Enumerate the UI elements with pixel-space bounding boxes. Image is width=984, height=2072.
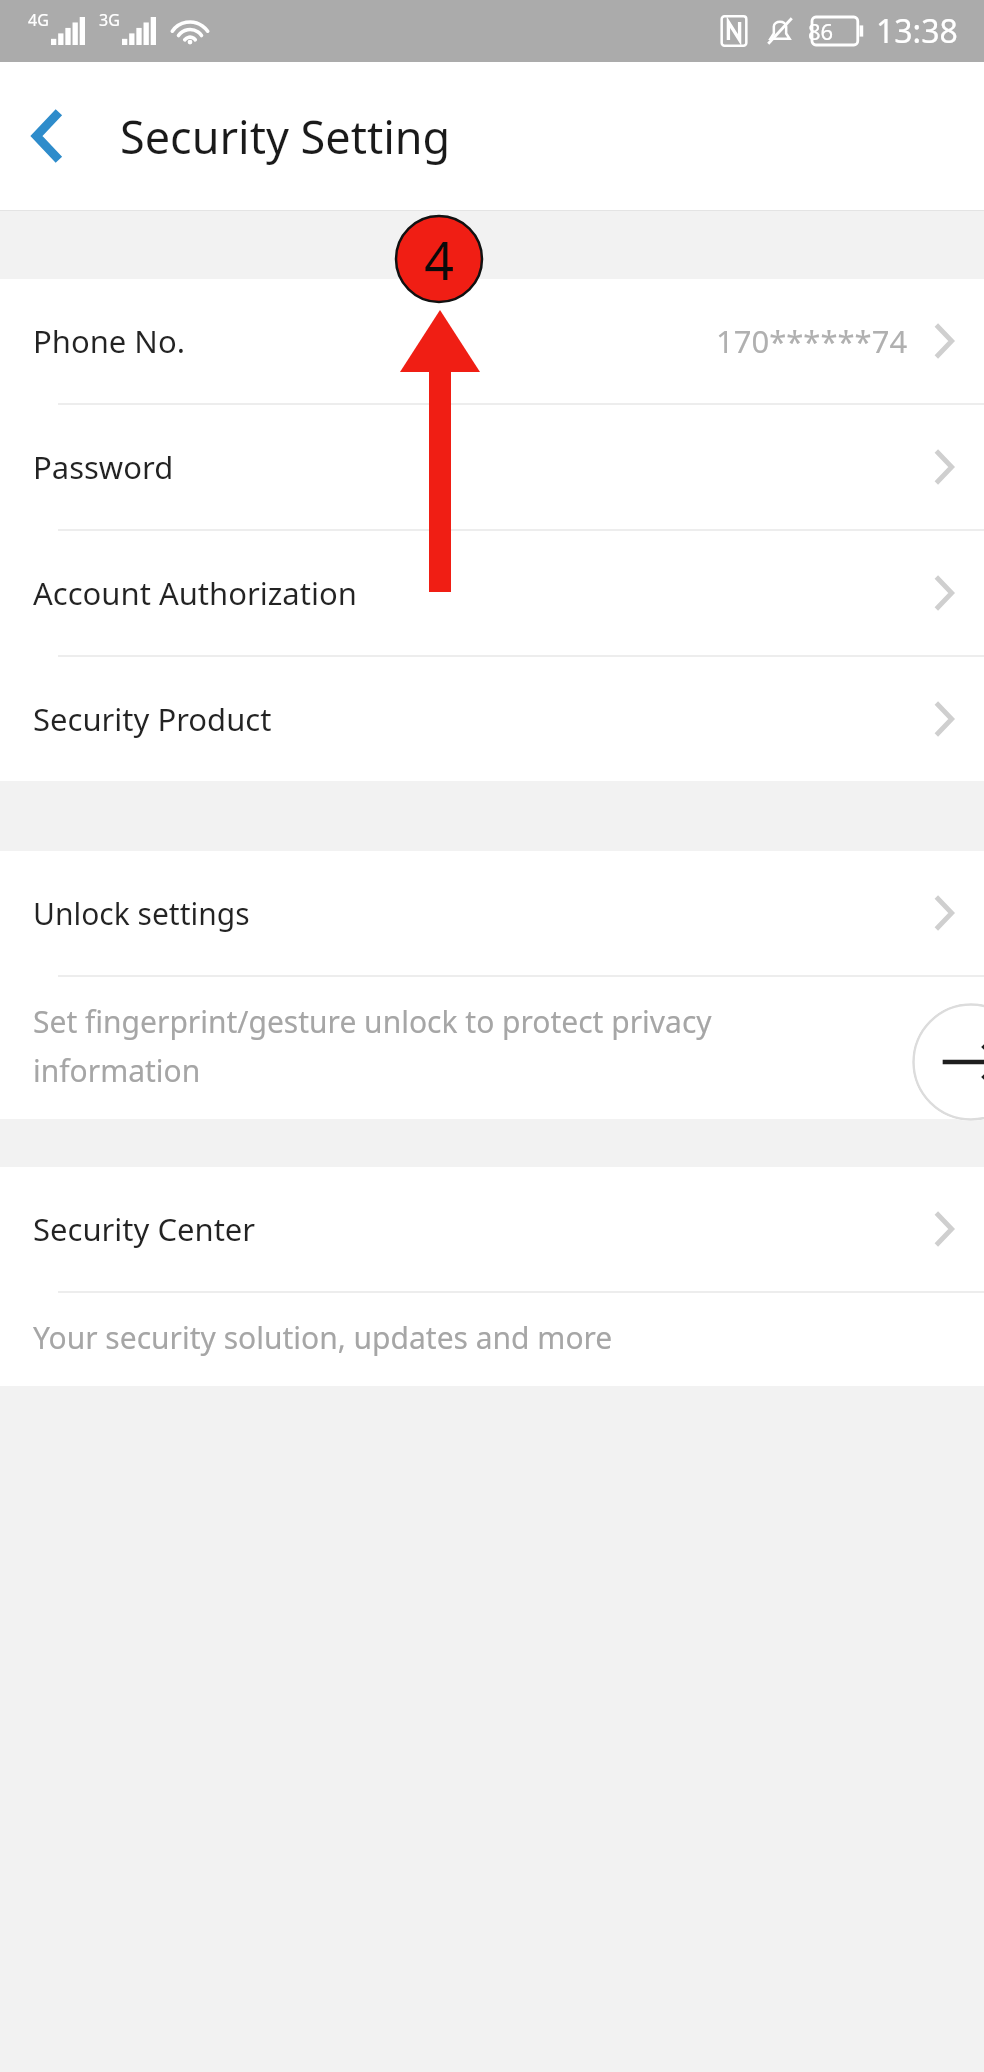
staticText: Phone No.: [33, 320, 185, 362]
staticText: 4: [424, 224, 454, 295]
button[interactable]: Back: [0, 81, 96, 191]
staticText: Security Setting: [120, 106, 451, 167]
staticText: information: [33, 1050, 201, 1091]
button[interactable]: Next: [912, 1003, 984, 1121]
button[interactable]: Account Authorization: [0, 531, 984, 655]
staticText: 3G: [99, 9, 120, 31]
button[interactable]: Security Center: [0, 1167, 984, 1291]
staticText: Account Authorization: [33, 572, 357, 614]
staticText: Security Product: [33, 698, 272, 740]
button[interactable]: Security Product: [0, 657, 984, 781]
button[interactable]: Phone No.: [0, 279, 984, 403]
staticText: Security Center: [33, 1208, 256, 1250]
staticText: Your security solution, updates and more: [33, 1317, 613, 1358]
button[interactable]: Password: [0, 405, 984, 529]
staticText: Set fingerprint/gesture unlock to protec…: [33, 1001, 712, 1042]
button[interactable]: Unlock settings: [0, 851, 984, 975]
staticText: 13:38: [876, 9, 958, 53]
staticText: 86: [808, 16, 834, 46]
staticText: Unlock settings: [33, 893, 250, 934]
staticText: Password: [33, 446, 174, 488]
staticText: 170******74: [716, 320, 908, 362]
staticText: 4G: [28, 9, 49, 31]
